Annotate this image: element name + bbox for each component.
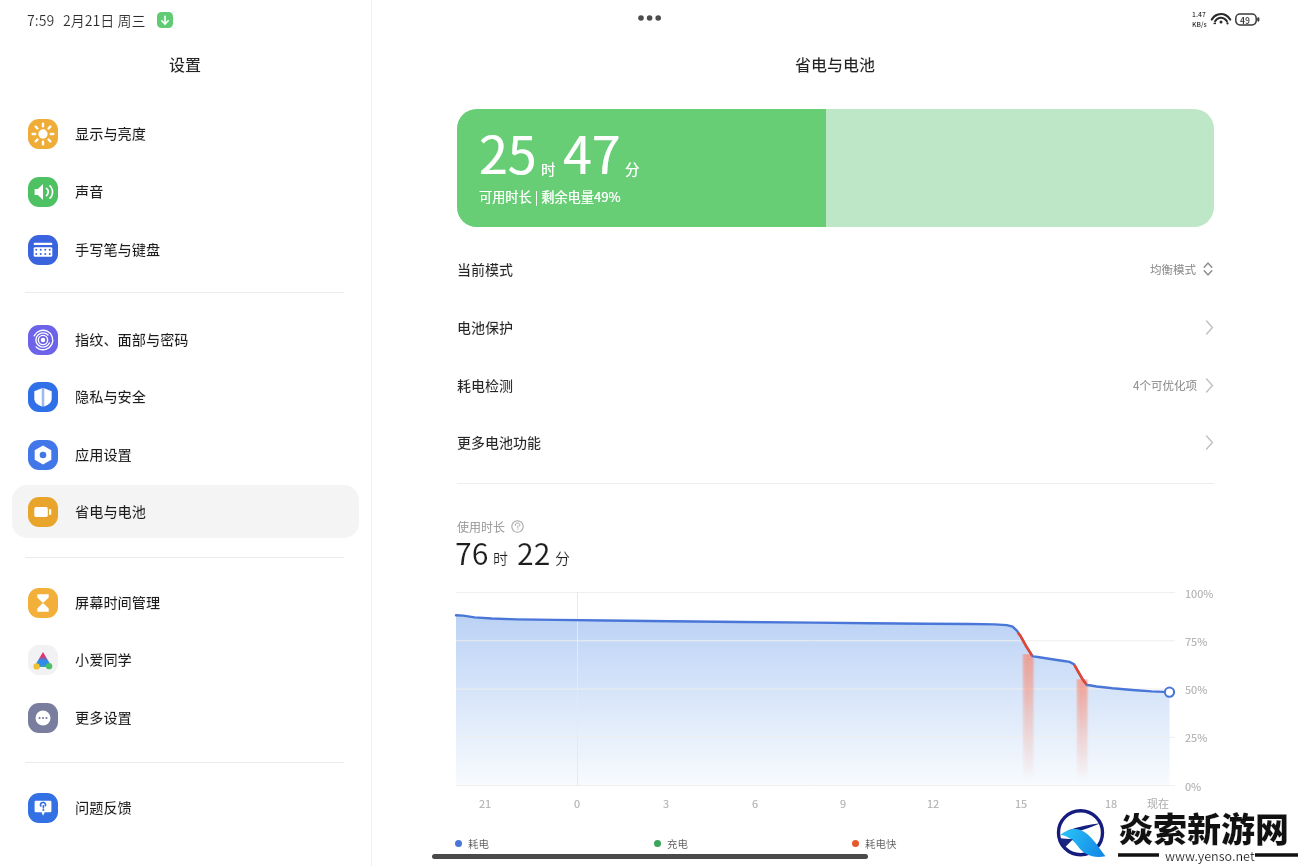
staticText: 耗电: [468, 836, 489, 851]
staticText: 75%: [1185, 633, 1208, 649]
staticText: 0: [574, 795, 581, 811]
button[interactable]: 充电: [654, 834, 688, 853]
button[interactable]: 屏幕时间管理: [12, 576, 359, 629]
staticText: 50%: [1185, 681, 1208, 697]
button[interactable]: 问题反馈: [12, 781, 359, 834]
staticText: 均衡模式: [1150, 261, 1196, 278]
button[interactable]: 耗电: [455, 834, 489, 853]
staticText: 21: [479, 795, 492, 811]
button[interactable]: 声音: [12, 165, 359, 218]
staticText: 隐私与安全: [75, 386, 146, 407]
staticText: 显示与亮度: [75, 123, 146, 144]
staticText: 焱索新游网: [1119, 803, 1289, 852]
staticText: KB/s: [1192, 19, 1207, 29]
staticText: 1.47: [1192, 9, 1206, 19]
button[interactable]: About usage time: [511, 520, 524, 533]
staticText: 分: [625, 158, 640, 179]
button[interactable]: 隐私与安全: [12, 370, 359, 423]
staticText: 耗电快: [865, 836, 897, 851]
button[interactable]: 指纹、面部与密码: [12, 313, 359, 366]
button[interactable]: Download in progress: [157, 12, 173, 28]
button[interactable]: 省电与电池: [12, 485, 359, 538]
staticText: 更多电池功能: [457, 432, 541, 452]
button[interactable]: 耗电快: [852, 834, 897, 853]
button[interactable]: 25: [457, 109, 1214, 227]
button[interactable]: More options: [632, 6, 668, 30]
staticText: 使用时长: [457, 518, 506, 535]
staticText: 设置: [169, 52, 202, 75]
staticText: www.yenso.net: [1165, 846, 1255, 864]
staticText: 100%: [1185, 585, 1214, 601]
staticText: 47: [563, 114, 621, 189]
staticText: 问题反馈: [75, 797, 132, 818]
button[interactable]: 应用设置: [12, 428, 359, 481]
button[interactable]: 更多电池功能: [457, 413, 1214, 471]
button[interactable]: 手写笔与键盘: [12, 223, 359, 276]
staticText: 省电与电池: [795, 52, 876, 75]
staticText: 手写笔与键盘: [75, 239, 161, 260]
staticText: 15: [1015, 795, 1028, 811]
button[interactable]: 电池保护: [457, 298, 1214, 356]
staticText: 0%: [1185, 778, 1202, 794]
staticText: 现在: [1147, 795, 1169, 811]
staticText: 6: [752, 795, 759, 811]
staticText: 声音: [75, 181, 104, 202]
staticText: 屏幕时间管理: [75, 592, 161, 613]
staticText: 18: [1105, 795, 1118, 811]
staticText: 充电: [667, 836, 688, 851]
staticText: 分: [555, 547, 571, 569]
staticText: 应用设置: [75, 444, 132, 465]
button[interactable]: 耗电检测: [457, 356, 1214, 414]
staticText: 指纹、面部与密码: [75, 329, 189, 350]
staticText: 小爱同学: [75, 649, 132, 670]
button[interactable]: 更多设置: [12, 691, 359, 744]
button[interactable]: 小爱同学: [12, 633, 359, 686]
staticText: 7:59: [27, 10, 55, 30]
staticText: 9: [840, 795, 847, 811]
staticText: 76: [455, 530, 489, 573]
staticText: 4个可优化项: [1133, 377, 1197, 394]
staticText: 可用时长 | 剩余电量49%: [479, 187, 621, 206]
staticText: 25%: [1185, 729, 1208, 745]
staticText: 更多设置: [75, 707, 132, 728]
button[interactable]: 当前模式: [457, 240, 1214, 298]
staticText: 49: [1240, 14, 1251, 26]
staticText: 3: [663, 795, 670, 811]
button[interactable]: 显示与亮度: [12, 107, 359, 160]
staticText: 耗电检测: [457, 375, 513, 395]
button[interactable]: Status: network and battery: [1192, 9, 1260, 29]
staticText: 时: [493, 547, 509, 569]
staticText: 2月21日 周三: [63, 10, 146, 30]
staticText: 省电与电池: [75, 501, 146, 522]
staticText: 电池保护: [457, 317, 513, 337]
staticText: 时: [541, 158, 556, 179]
staticText: 22: [517, 530, 551, 573]
staticText: 当前模式: [457, 259, 513, 279]
staticText: 12: [927, 795, 940, 811]
staticText: 25: [479, 114, 537, 189]
